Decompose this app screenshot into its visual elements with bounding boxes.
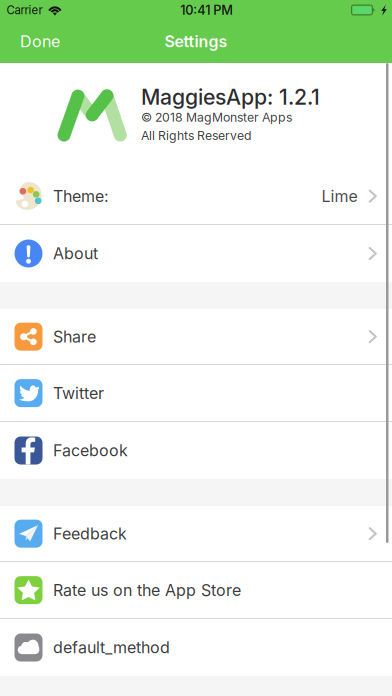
button[interactable]: Feedback [0, 506, 392, 562]
staticText: Share [53, 327, 96, 346]
staticText: © 2018 MagMonster Apps [141, 110, 292, 125]
staticText: default_method [53, 638, 170, 657]
staticText: Twitter [53, 383, 104, 403]
button[interactable]: Facebook [0, 422, 392, 479]
button[interactable]: Twitter [0, 365, 392, 422]
button[interactable]: default_method [0, 619, 392, 676]
button[interactable]: Rate us on the App Store [0, 562, 392, 619]
button[interactable]: Share [0, 309, 392, 365]
staticText: Facebook [53, 441, 128, 460]
staticText: Theme: [53, 186, 109, 206]
staticText: 10:41 PM [180, 2, 233, 18]
staticText: Settings [164, 32, 227, 51]
staticText: Feedback [53, 524, 127, 543]
staticText: MaggiesApp: 1.2.1 [141, 84, 320, 110]
button[interactable]: Theme: [0, 168, 392, 225]
button[interactable]: About [0, 225, 392, 282]
staticText: All Rights Reserved [141, 128, 252, 143]
button[interactable]: Done [0, 20, 70, 63]
staticText: Rate us on the App Store [53, 580, 241, 600]
staticText: About [53, 244, 98, 263]
staticText: Done [20, 32, 60, 51]
staticText: Carrier [6, 3, 42, 17]
staticText: Lime [321, 186, 357, 206]
